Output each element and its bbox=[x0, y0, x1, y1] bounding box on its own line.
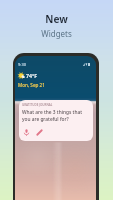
staticText: What are the 3 things that you are grate… bbox=[22, 109, 82, 123]
button[interactable]: Record voice note bbox=[22, 128, 31, 137]
staticText: Mon, Sep 21 bbox=[18, 82, 45, 88]
staticText: Widgets bbox=[41, 28, 72, 39]
button[interactable]: GRATITUDE JOURNAL bbox=[19, 100, 93, 141]
staticText: GRATITUDE JOURNAL bbox=[22, 103, 53, 107]
staticText: 9:30 bbox=[18, 62, 26, 67]
button[interactable]: Write note bbox=[35, 128, 44, 137]
staticText: 74°F bbox=[26, 72, 37, 79]
staticText: New bbox=[45, 12, 68, 26]
